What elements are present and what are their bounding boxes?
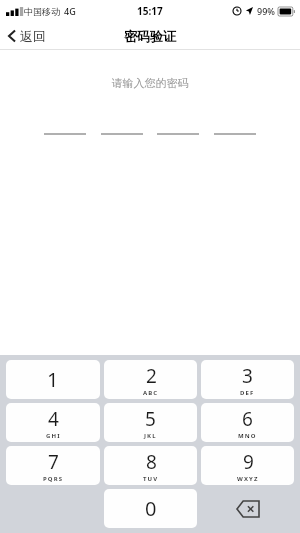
staticText: 4G [64, 5, 76, 17]
staticText: 8 [146, 449, 157, 475]
staticText: 请输入您的密码 [0, 76, 300, 90]
staticText: 2 [146, 363, 157, 389]
staticText: MNO [238, 432, 257, 440]
button[interactable]: 2 [104, 360, 197, 399]
button[interactable]: 5 [104, 403, 197, 442]
staticText: 15:17 [137, 4, 163, 18]
staticText: 1 [47, 366, 59, 393]
staticText: WXYZ [237, 475, 259, 483]
button[interactable]: 4 [6, 403, 100, 442]
staticText: PQRS [43, 475, 64, 483]
staticText: JKL [144, 432, 157, 440]
staticText: 4 [48, 406, 59, 432]
staticText: 9 [243, 449, 254, 475]
staticText: 中国移动 [24, 6, 60, 17]
button[interactable]: 0 [104, 489, 197, 528]
staticText: 3 [242, 363, 253, 389]
staticText: 6 [242, 406, 253, 432]
staticText: ABC [143, 389, 159, 397]
staticText: 0 [145, 495, 157, 522]
staticText: TUV [143, 475, 159, 483]
button[interactable]: 6 [201, 403, 294, 442]
staticText: 99% [257, 5, 275, 17]
staticText: 返回 [20, 28, 46, 44]
button[interactable]: 3 [201, 360, 294, 399]
staticText: DEF [240, 389, 255, 397]
button[interactable]: 返回 [0, 22, 56, 50]
staticText: GHI [46, 432, 61, 440]
button[interactable]: 9 [201, 446, 294, 485]
staticText: 5 [145, 406, 156, 432]
button[interactable]: 1 [6, 360, 100, 399]
staticText: 密码验证 [124, 28, 176, 44]
button[interactable]: Delete [199, 487, 296, 530]
button[interactable]: 7 [6, 446, 100, 485]
staticText: 7 [48, 449, 59, 475]
button[interactable]: 8 [104, 446, 197, 485]
